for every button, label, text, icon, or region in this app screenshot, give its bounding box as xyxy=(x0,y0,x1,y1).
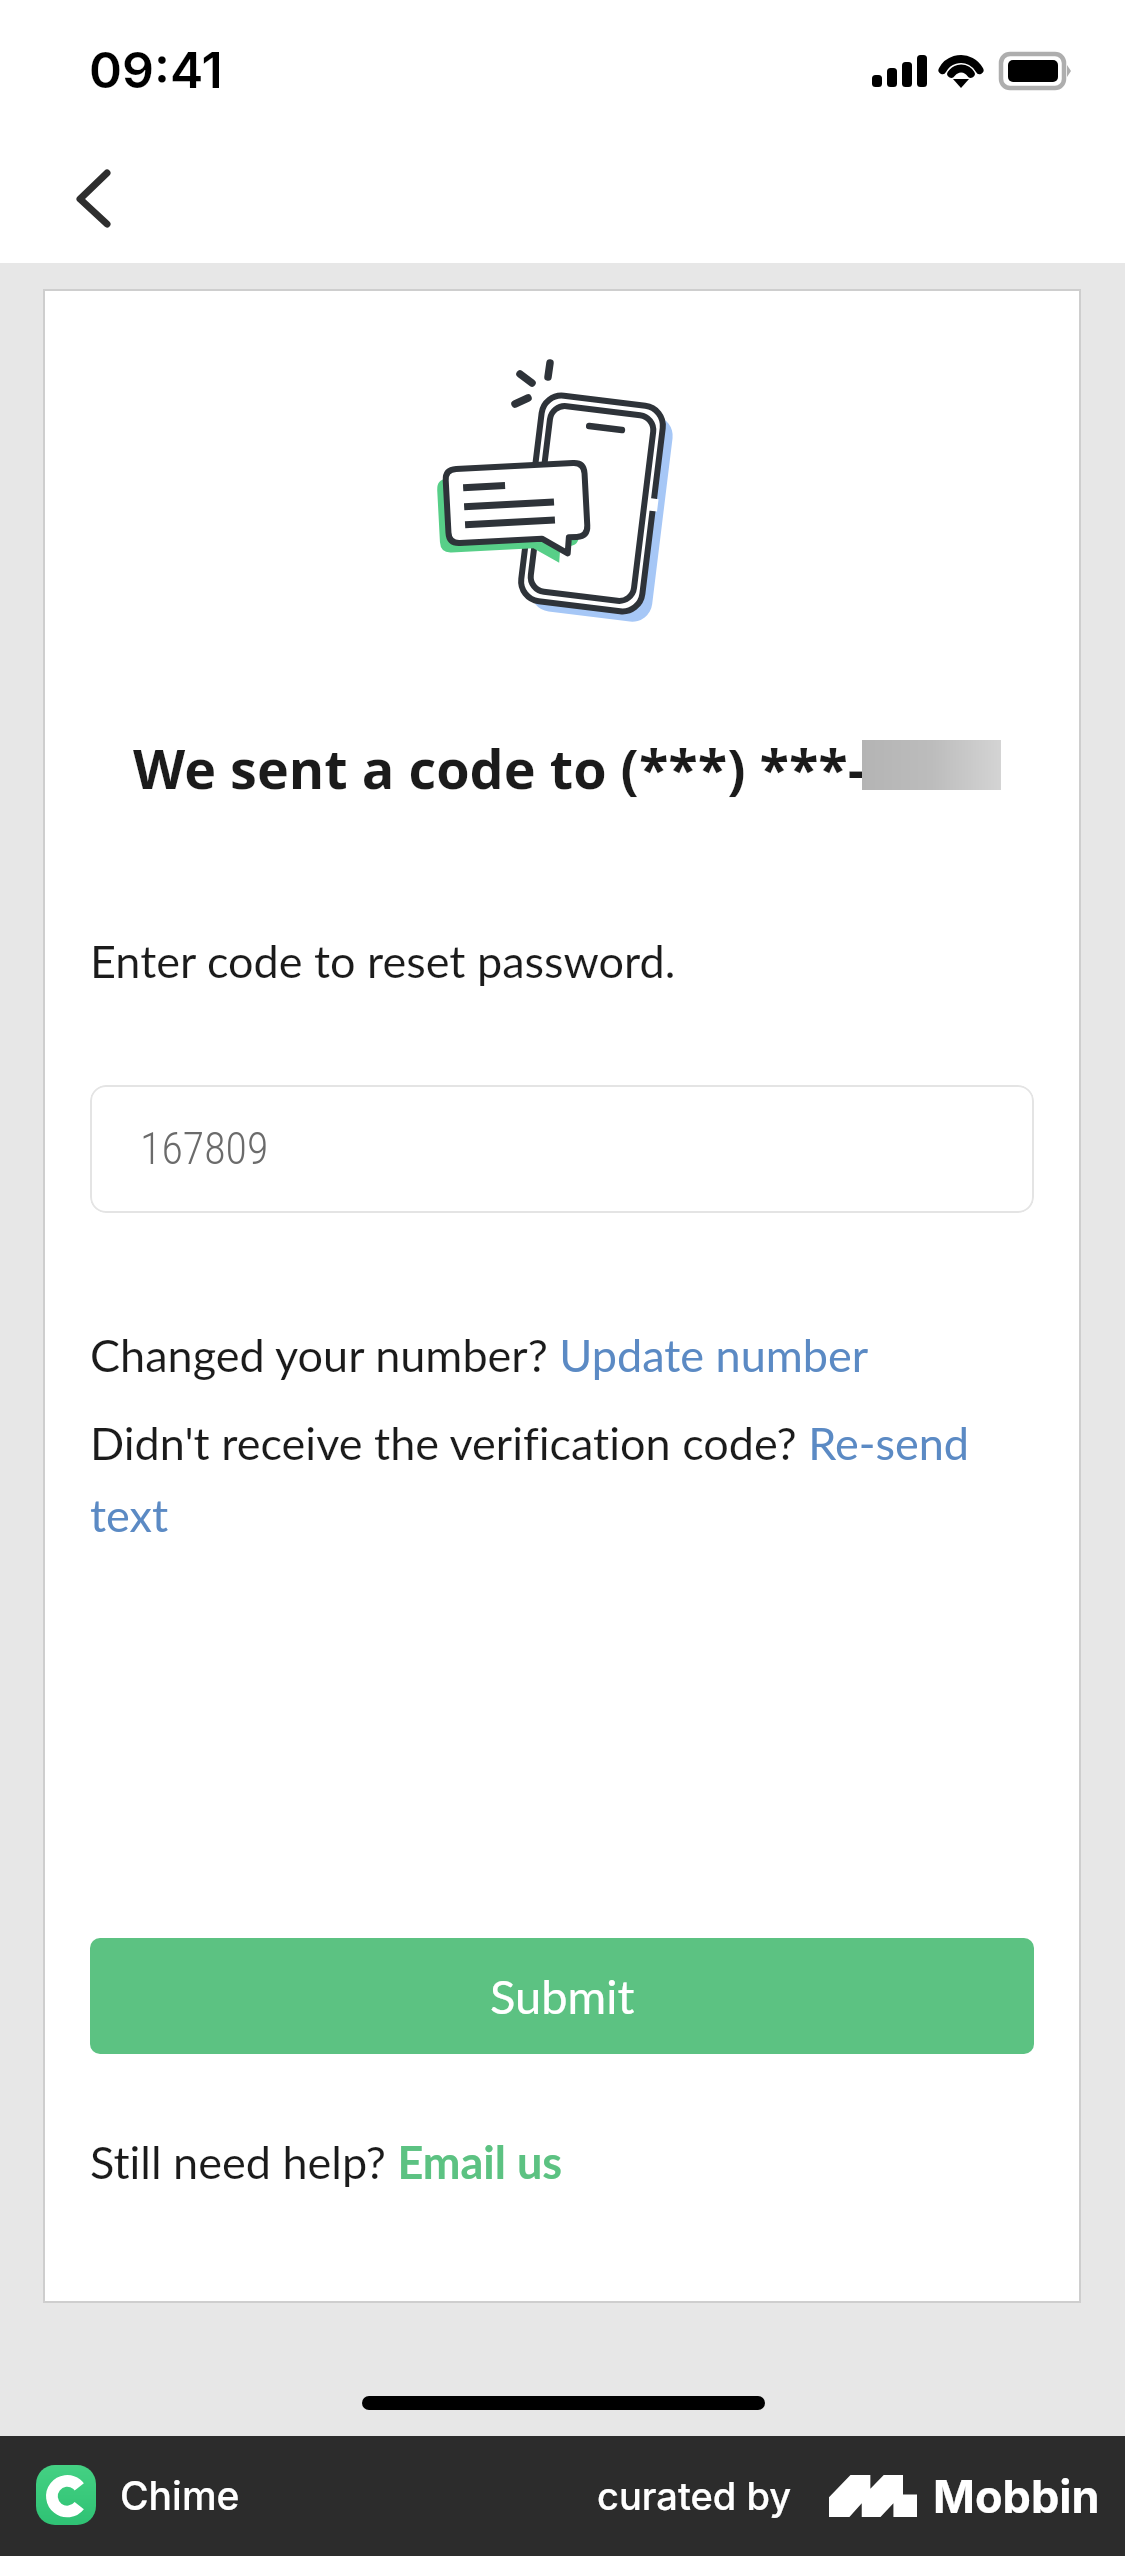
staticText: Mobbin xyxy=(933,2469,1100,2523)
button[interactable]: Didn't receive the verification code? Re… xyxy=(90,1416,1040,1542)
staticText: Submit xyxy=(490,1968,635,2024)
button[interactable]: Changed your number? Update number xyxy=(90,1328,1040,1382)
button[interactable]: 167809 xyxy=(90,1085,1034,1213)
staticText: 09:41 xyxy=(89,40,223,100)
staticText: Chime xyxy=(120,2472,240,2519)
staticText: Enter code to reset password. xyxy=(90,934,676,988)
button[interactable]: Submit xyxy=(90,1938,1034,2054)
staticText: curated by xyxy=(597,2473,792,2519)
button[interactable]: Back xyxy=(42,149,142,249)
staticText: We sent a code to (***) ***- xyxy=(133,731,866,805)
staticText: 167809 xyxy=(140,1123,269,1175)
button[interactable]: Still need help? Email us xyxy=(90,2135,563,2189)
